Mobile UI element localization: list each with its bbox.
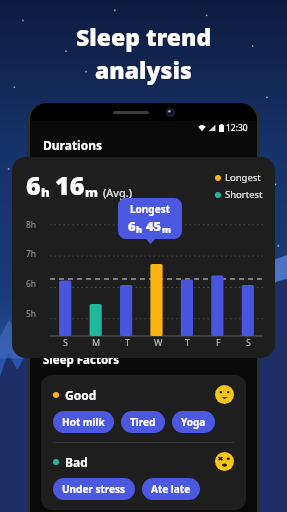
staticText: Longest xyxy=(130,202,170,216)
staticText: T xyxy=(125,336,131,348)
button[interactable]: Under stress xyxy=(53,478,135,500)
other: Bad mood xyxy=(215,452,234,471)
button[interactable]: Ate late xyxy=(142,478,200,500)
staticText: Shortest xyxy=(225,188,263,201)
staticText: Yoga xyxy=(181,415,206,429)
staticText: 6 xyxy=(128,217,136,235)
staticText: (Avg.) xyxy=(103,185,132,200)
staticText: 12:30 xyxy=(226,122,248,134)
button[interactable]: Hot milk xyxy=(53,411,114,433)
button[interactable]: Tired xyxy=(121,411,165,433)
staticText: h xyxy=(136,223,143,235)
button[interactable]: Longest xyxy=(118,198,182,239)
other: Good mood xyxy=(215,385,234,404)
staticText: Durations xyxy=(43,137,103,153)
staticText: Bad xyxy=(65,454,88,470)
staticText: 8h xyxy=(26,219,37,231)
staticText: Good xyxy=(65,387,97,403)
staticText: m xyxy=(85,183,99,201)
staticText: M xyxy=(92,336,101,348)
staticText: Longest xyxy=(225,171,261,184)
staticText: F xyxy=(216,336,221,348)
staticText: m xyxy=(162,223,172,235)
staticText: Sleep trend xyxy=(76,21,212,52)
staticText: Hot milk xyxy=(62,415,105,429)
staticText: h xyxy=(41,183,50,201)
staticText: 45 xyxy=(146,217,162,235)
staticText: W xyxy=(154,336,163,348)
staticText: Under stress xyxy=(62,482,126,496)
staticText: T xyxy=(185,336,191,348)
staticText: S xyxy=(246,336,251,348)
staticText: 5h xyxy=(26,308,37,320)
staticText: Tired xyxy=(130,415,156,429)
staticText: analysis xyxy=(95,54,192,85)
staticText: Sleep Factors xyxy=(43,352,119,368)
staticText: 16 xyxy=(55,168,85,202)
staticText: 7h xyxy=(26,248,37,260)
staticText: 6h xyxy=(26,278,37,290)
button[interactable]: Good xyxy=(53,385,234,404)
staticText: 6 xyxy=(26,168,41,202)
button[interactable]: Yoga xyxy=(172,411,215,433)
staticText: Ate late xyxy=(151,482,191,496)
staticText: S xyxy=(63,336,68,348)
button[interactable]: Bad xyxy=(53,452,234,471)
